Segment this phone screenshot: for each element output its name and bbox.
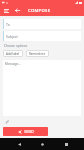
button[interactable]: SEND <box>3 127 48 136</box>
staticText: COMPOSE <box>28 8 51 14</box>
staticText: Remind me <box>29 52 46 56</box>
button[interactable]: Message... <box>3 60 81 116</box>
button[interactable]: Back <box>14 139 24 149</box>
button[interactable]: Recent apps <box>61 139 71 149</box>
staticText: Choose options <box>4 44 28 48</box>
staticText: Message... <box>5 62 21 66</box>
button[interactable]: Remind me <box>26 50 49 57</box>
staticText: SEND <box>24 129 34 134</box>
button[interactable]: Add label <box>3 50 23 57</box>
staticText: To <box>6 22 10 27</box>
button[interactable]: Subject <box>3 31 81 41</box>
staticText: Add label <box>6 52 20 56</box>
button[interactable]: Back <box>13 6 22 15</box>
staticText: Subject <box>6 34 18 39</box>
button[interactable]: Menu <box>2 6 11 15</box>
button[interactable]: Home <box>37 139 47 149</box>
button[interactable]: Attach file <box>3 118 10 125</box>
button[interactable]: To <box>3 19 81 29</box>
